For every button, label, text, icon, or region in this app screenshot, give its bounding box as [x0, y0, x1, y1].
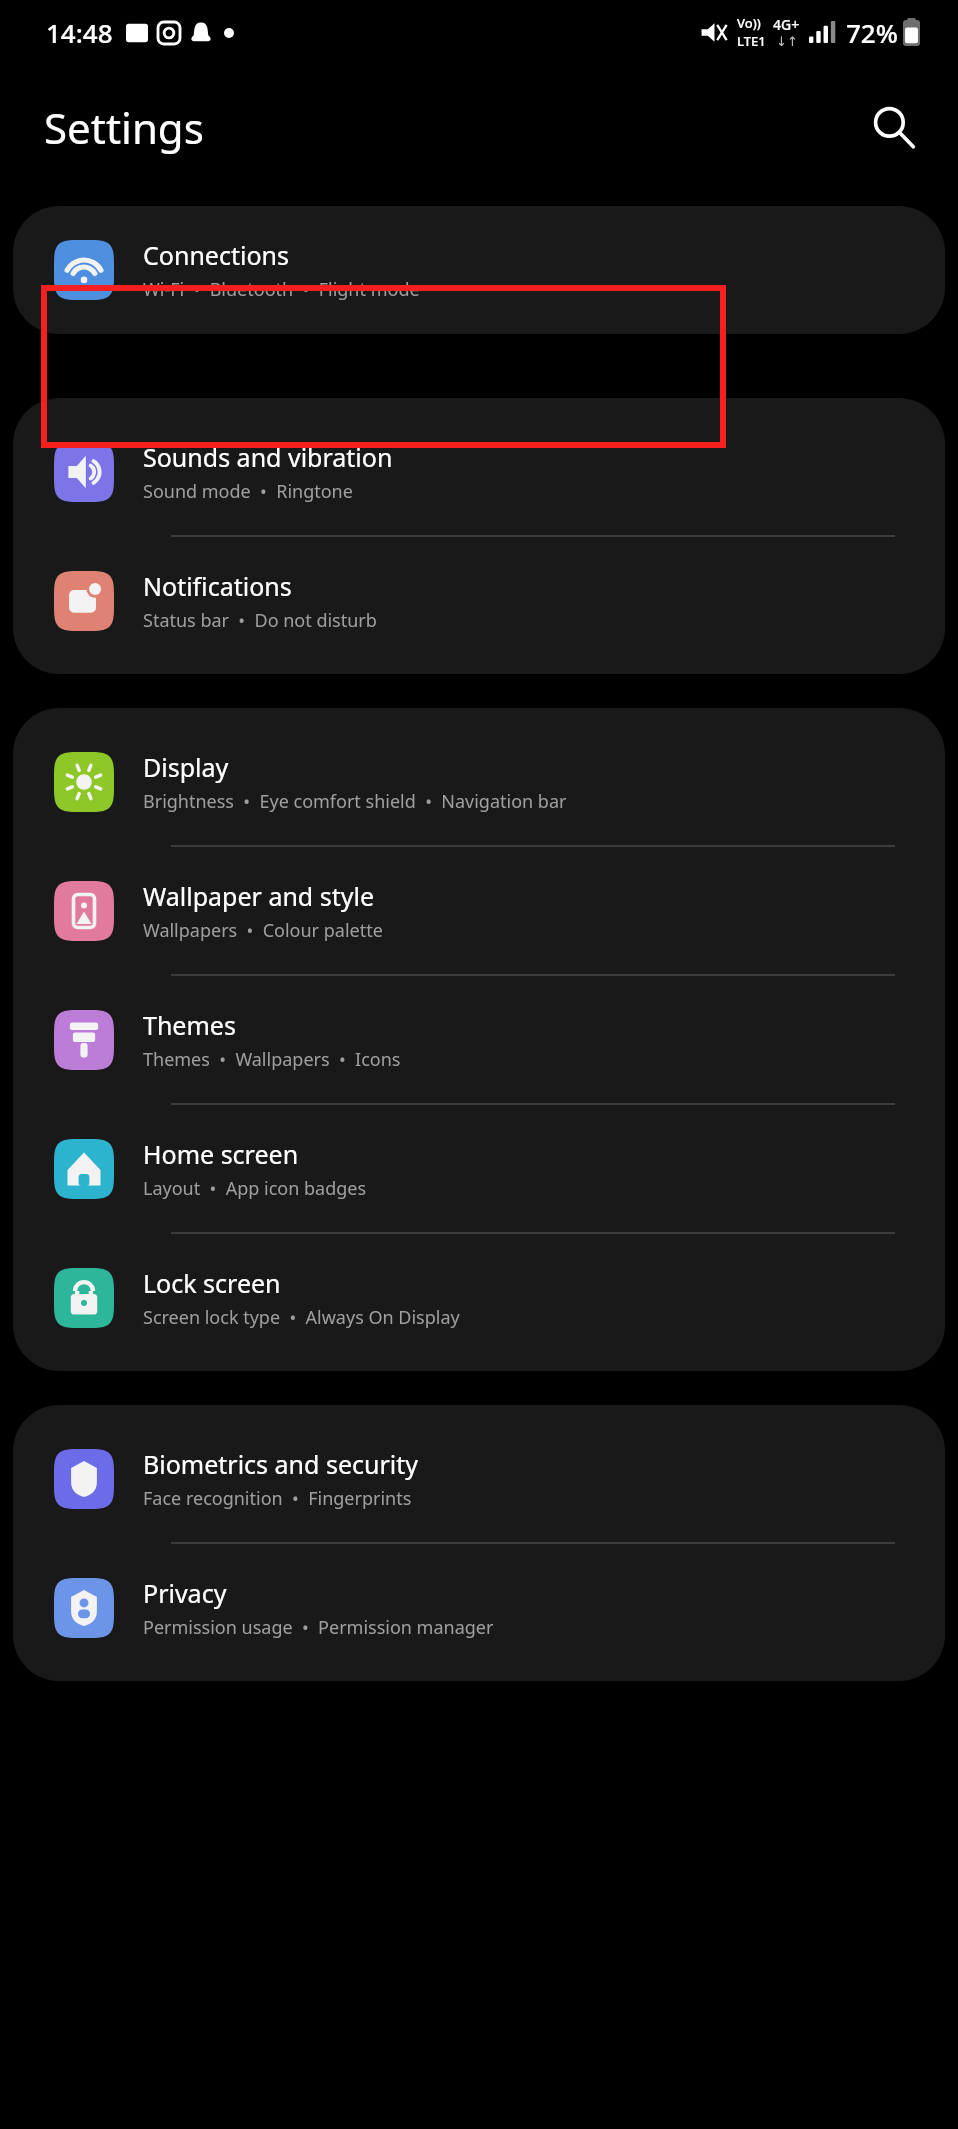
- button[interactable]: Themes: [13, 976, 945, 1103]
- staticText: LTE1: [737, 32, 766, 50]
- button[interactable]: Home screen: [13, 1105, 945, 1232]
- staticText: Privacy: [143, 1576, 227, 1610]
- staticText: Face recognition • Fingerprints: [143, 1486, 412, 1511]
- button[interactable]: Connections: [13, 206, 945, 334]
- staticText: Notifications: [143, 569, 292, 603]
- staticText: Wallpapers • Colour palette: [143, 918, 383, 943]
- staticText: Lock screen: [143, 1266, 281, 1300]
- staticText: Screen lock type • Always On Display: [143, 1305, 460, 1330]
- staticText: Layout • App icon badges: [143, 1176, 367, 1201]
- staticText: Themes: [143, 1008, 236, 1042]
- staticText: Display: [143, 750, 229, 784]
- staticText: Status bar • Do not disturb: [143, 608, 377, 633]
- button[interactable]: Sounds and vibration: [13, 408, 945, 535]
- staticText: Sound mode • Ringtone: [143, 479, 353, 504]
- staticText: Vo)): [737, 14, 761, 32]
- staticText: Sounds and vibration: [143, 440, 393, 474]
- button[interactable]: Biometrics and security: [13, 1415, 945, 1542]
- staticText: Permission usage • Permission manager: [143, 1615, 494, 1640]
- staticText: ↓↑: [776, 34, 798, 49]
- staticText: 4G+: [773, 15, 800, 34]
- button[interactable]: Privacy: [13, 1544, 945, 1671]
- staticText: Wi-Fi • Bluetooth • Flight mode: [143, 277, 420, 302]
- staticText: Settings: [44, 99, 204, 156]
- staticText: Biometrics and security: [143, 1447, 419, 1481]
- staticText: 14:48: [46, 15, 113, 50]
- button[interactable]: Wallpaper and style: [13, 847, 945, 974]
- staticText: Wallpaper and style: [143, 879, 375, 913]
- button[interactable]: Search: [854, 87, 934, 167]
- staticText: Connections: [143, 238, 289, 272]
- button[interactable]: Lock screen: [13, 1234, 945, 1361]
- staticText: Brightness • Eye comfort shield • Naviga…: [143, 789, 567, 814]
- button[interactable]: Notifications: [13, 537, 945, 664]
- staticText: Home screen: [143, 1137, 299, 1171]
- button[interactable]: Display: [13, 718, 945, 845]
- staticText: Themes • Wallpapers • Icons: [143, 1047, 401, 1072]
- staticText: 72%: [846, 15, 898, 50]
